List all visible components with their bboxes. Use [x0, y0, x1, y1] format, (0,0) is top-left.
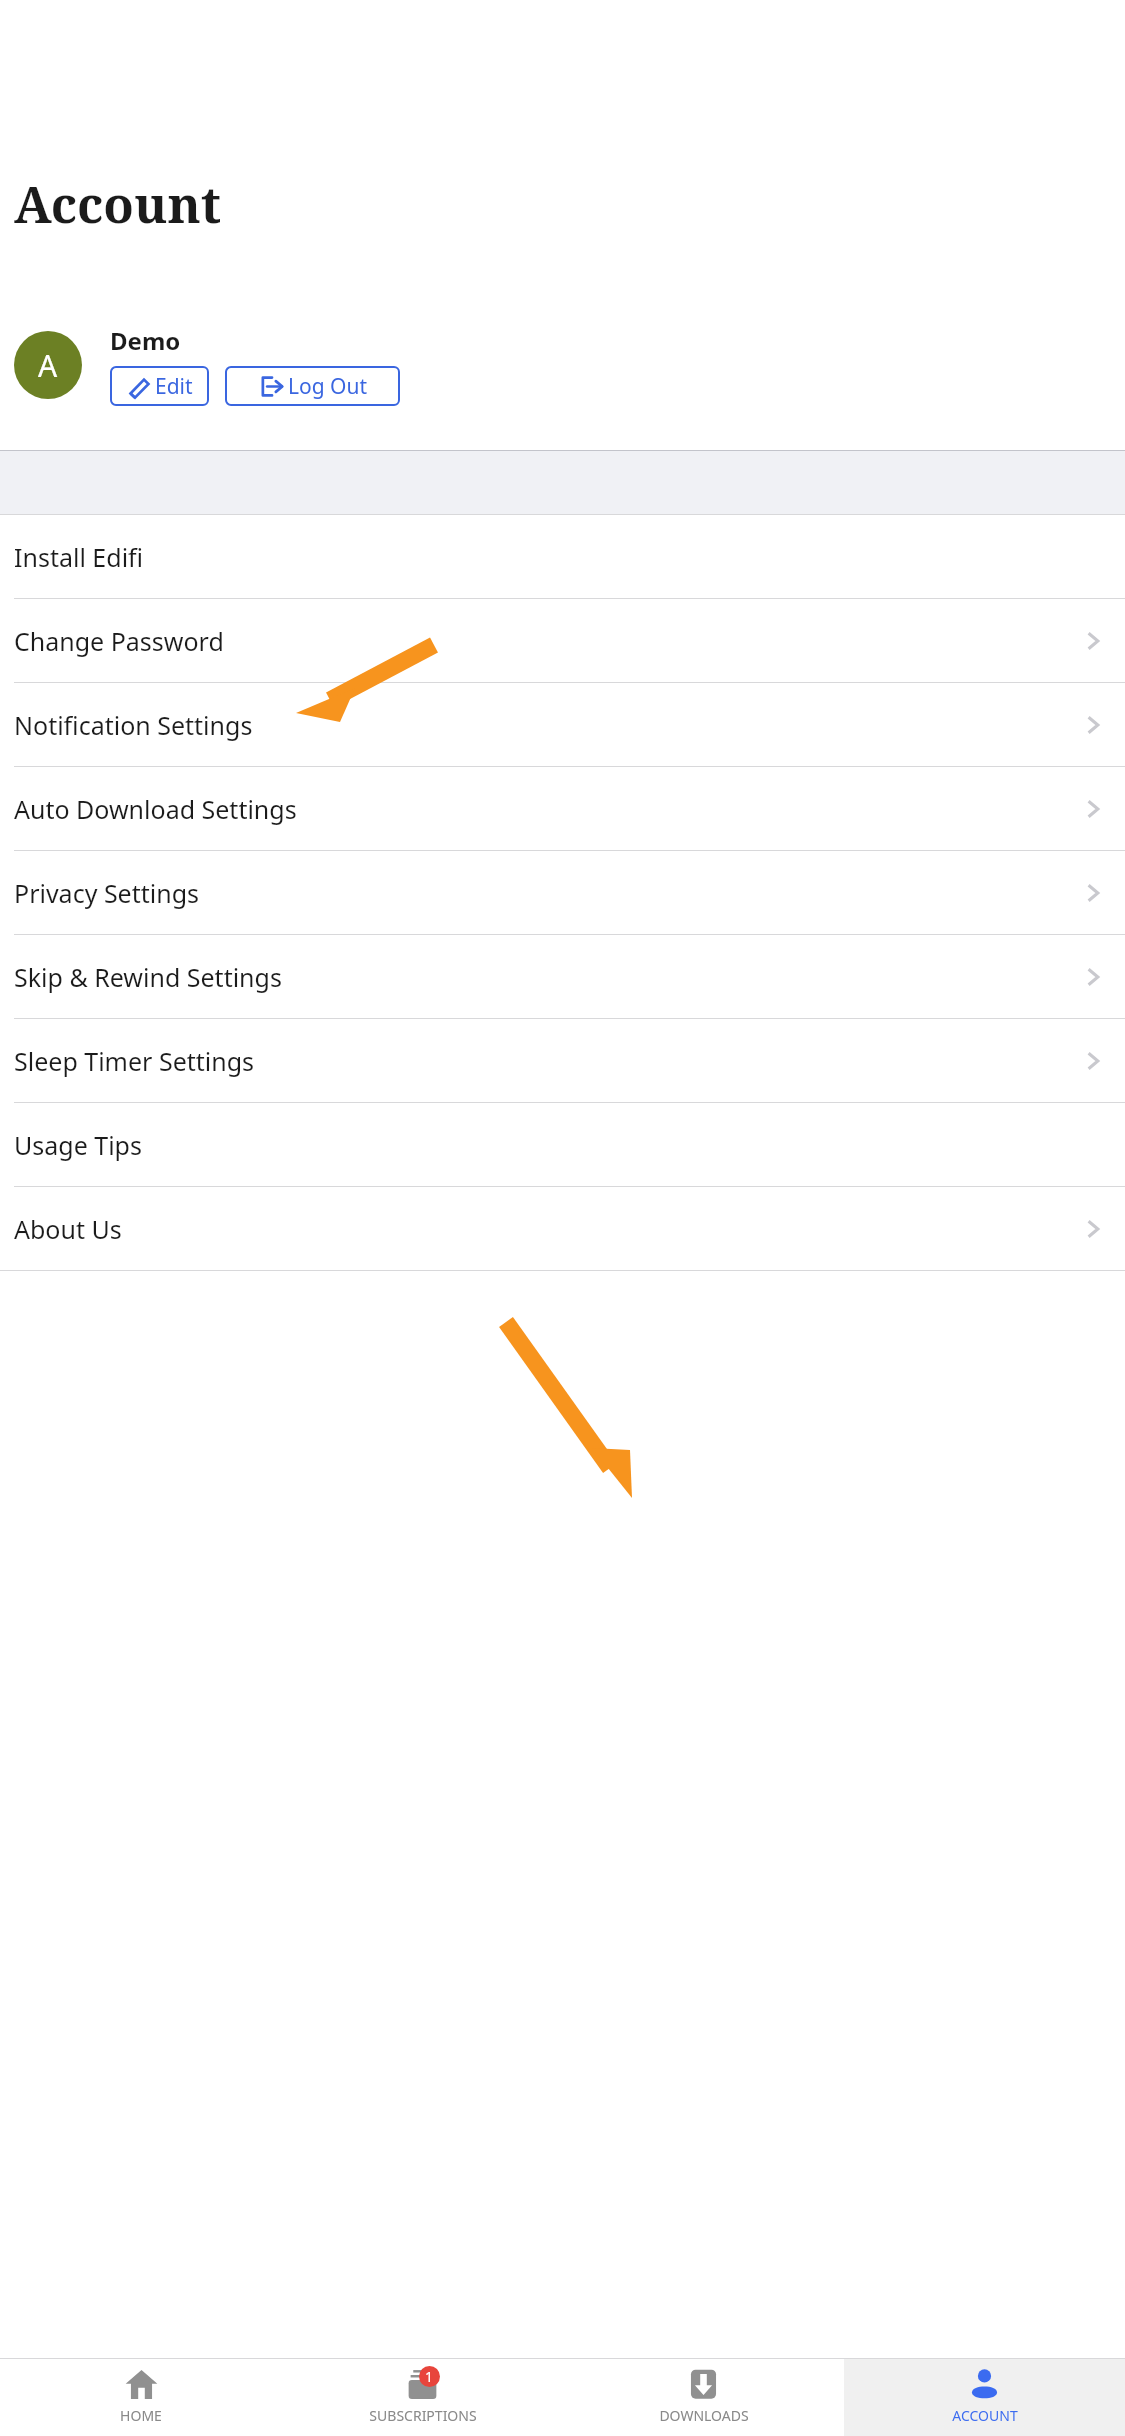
button[interactable]: DOWNLOADS	[563, 2359, 844, 2436]
button[interactable]: ACCOUNT	[844, 2359, 1125, 2436]
button[interactable]: HOME	[0, 2359, 282, 2436]
staticText: 1	[425, 2367, 434, 2386]
button[interactable]: About Us	[0, 1187, 1125, 1270]
staticText: Usage Tips	[14, 1128, 142, 1162]
button[interactable]: Log Out	[225, 366, 400, 406]
button[interactable]: Sleep Timer Settings	[0, 1019, 1125, 1103]
staticText: Log Out	[288, 372, 368, 401]
staticText: Sleep Timer Settings	[14, 1044, 255, 1078]
staticText: Skip & Rewind Settings	[14, 960, 282, 994]
button[interactable]: Notification Settings	[0, 683, 1125, 767]
button[interactable]: 1	[282, 2359, 563, 2436]
button[interactable]: Change Password	[0, 599, 1125, 683]
staticText: ACCOUNT	[952, 2406, 1018, 2425]
staticText: Account	[14, 170, 221, 238]
staticText: Auto Download Settings	[14, 792, 297, 826]
button[interactable]: Usage Tips	[0, 1103, 1125, 1187]
staticText: SUBSCRIPTIONS	[369, 2406, 477, 2425]
staticText: Edit	[155, 372, 193, 401]
staticText: Install Edifi	[14, 540, 144, 574]
staticText: About Us	[14, 1212, 122, 1246]
staticText: A	[38, 345, 58, 386]
staticText: Privacy Settings	[14, 876, 200, 910]
button[interactable]: Install Edifi	[0, 515, 1125, 599]
staticText: Notification Settings	[14, 708, 253, 742]
staticText: Change Password	[14, 624, 224, 658]
button[interactable]: Edit	[110, 366, 209, 406]
button[interactable]: Privacy Settings	[0, 851, 1125, 935]
button[interactable]: Auto Download Settings	[0, 767, 1125, 851]
staticText: HOME	[120, 2406, 162, 2425]
staticText: Demo	[110, 324, 181, 357]
staticText: DOWNLOADS	[659, 2406, 749, 2425]
button[interactable]: Skip & Rewind Settings	[0, 935, 1125, 1019]
